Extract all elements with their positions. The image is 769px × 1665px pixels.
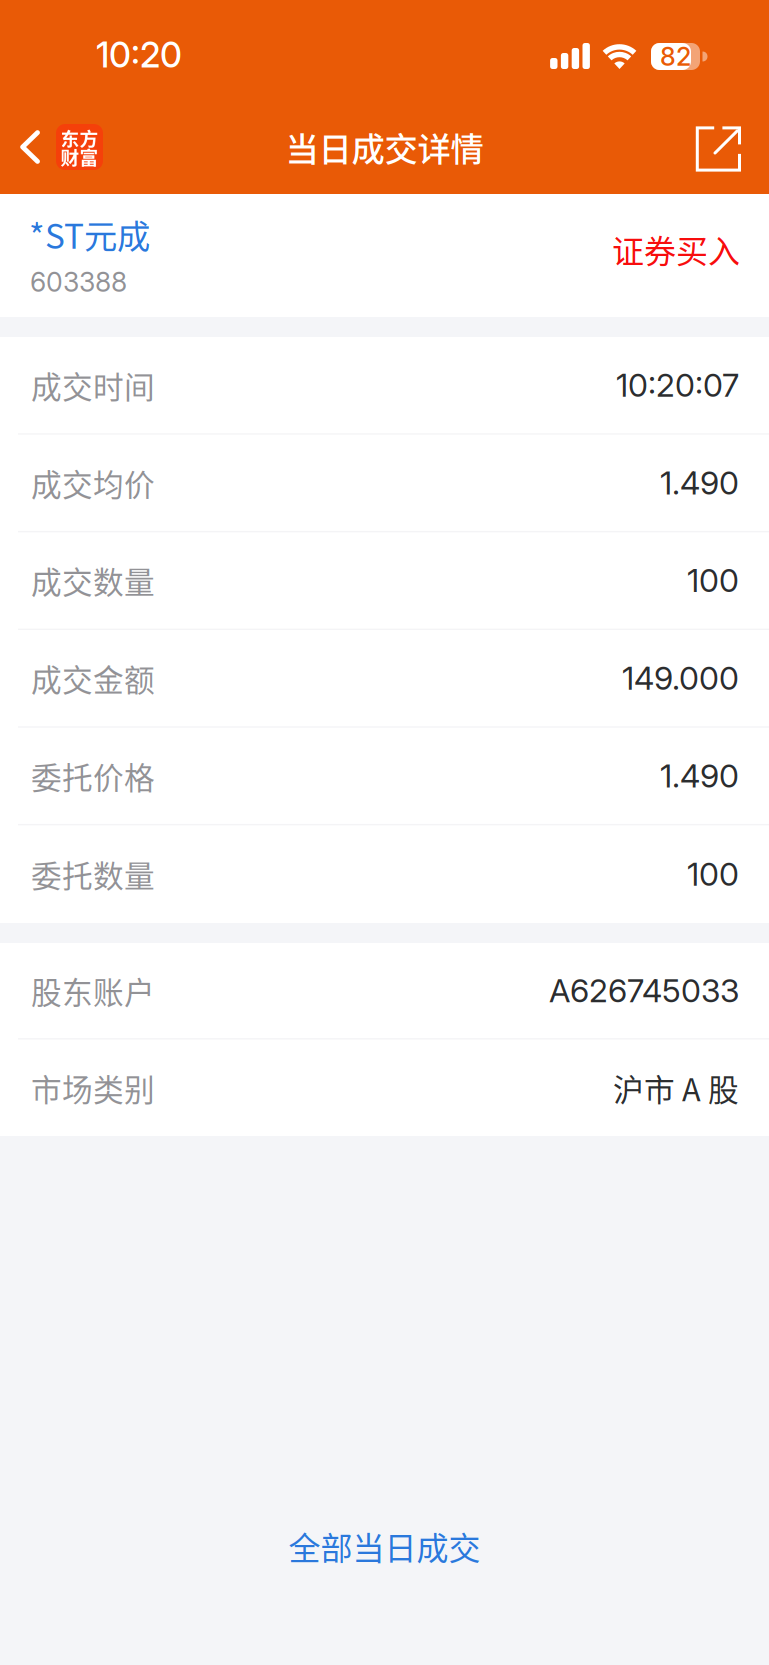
staticText: 股东账户 xyxy=(31,968,155,1013)
staticText: 委托价格 xyxy=(31,754,155,798)
button[interactable]: 分享 xyxy=(676,100,769,194)
staticText: *ST元成 xyxy=(29,210,150,258)
staticText: 财富 xyxy=(60,143,98,170)
button[interactable]: 返回 东方财富 xyxy=(0,100,117,194)
staticText: 100 xyxy=(687,855,739,893)
staticText: 1.490 xyxy=(660,756,739,795)
staticText: A626745033 xyxy=(549,971,739,1010)
staticText: 市场类别 xyxy=(31,1066,155,1110)
staticText: 成交时间 xyxy=(31,363,155,407)
staticText: 成交数量 xyxy=(31,558,155,603)
staticText: 1.490 xyxy=(660,463,739,502)
staticText: 委托数量 xyxy=(31,852,155,896)
staticText: 603388 xyxy=(30,266,127,298)
staticText: 成交均价 xyxy=(31,461,155,505)
staticText: 当日成交详情 xyxy=(285,123,483,171)
staticText: 全部当日成交 xyxy=(288,1523,480,1569)
staticText: 10:20 xyxy=(96,34,182,76)
button[interactable]: 全部当日成交 xyxy=(219,1503,549,1589)
staticText: 149.000 xyxy=(622,659,739,697)
staticText: 成交金额 xyxy=(31,656,155,700)
staticText: 82 xyxy=(660,41,691,72)
staticText: 100 xyxy=(687,561,739,600)
staticText: 东方 xyxy=(60,124,98,151)
staticText: 证券买入 xyxy=(612,226,740,272)
staticText: 10:20:07 xyxy=(616,366,739,404)
staticText: 沪市 A 股 xyxy=(613,1066,739,1110)
